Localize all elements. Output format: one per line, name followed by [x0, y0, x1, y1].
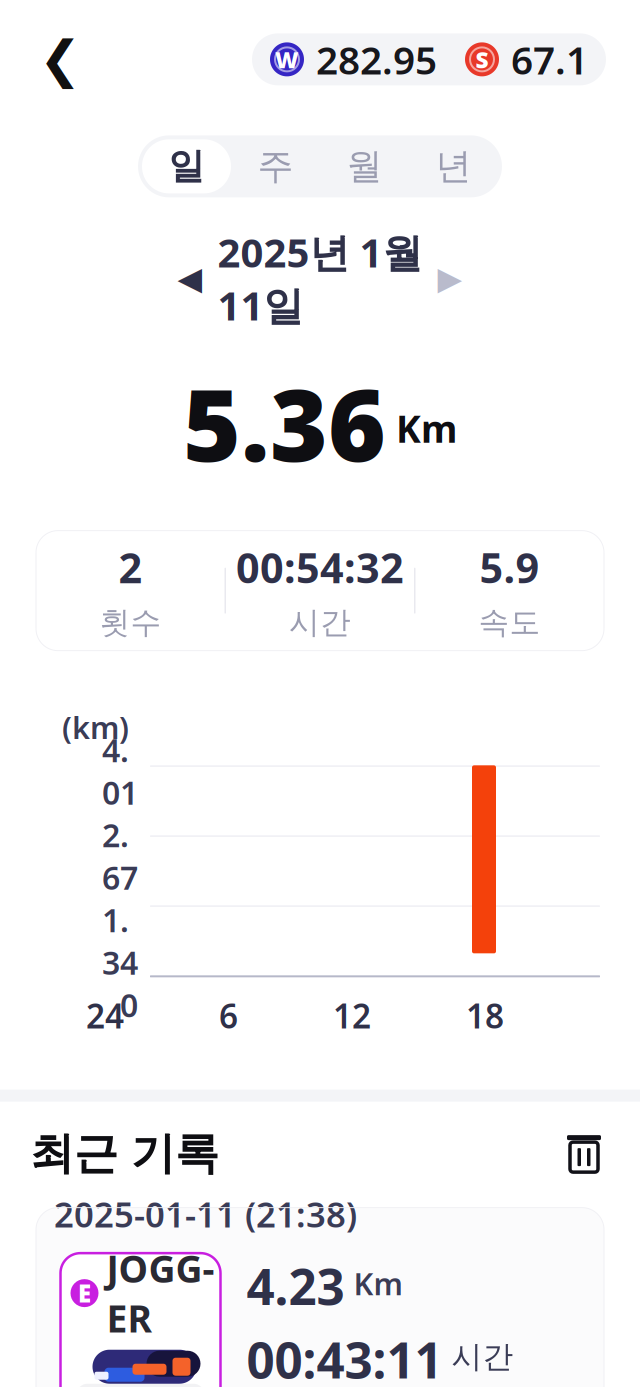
staticText: 6 — [219, 993, 238, 1038]
staticText: 2025년 1월 11일 — [217, 225, 422, 332]
staticText: 속도 — [478, 604, 540, 641]
button[interactable]: Previous day — [165, 253, 215, 303]
staticText: 년 — [435, 144, 471, 188]
staticText: (km) — [62, 707, 129, 747]
staticText: 시간 — [289, 604, 351, 641]
button[interactable]: Next day — [425, 253, 475, 303]
button[interactable]: Delete records — [556, 1126, 612, 1182]
staticText: Km — [353, 1263, 402, 1304]
staticText: 시간 — [451, 1338, 513, 1376]
staticText: 1.34 — [102, 899, 138, 984]
staticText: 4.01 — [102, 729, 138, 814]
staticText: ▶ — [437, 260, 462, 297]
button[interactable]: 주 — [231, 139, 320, 193]
staticText: E — [78, 1277, 91, 1309]
staticText: 00:43:11 — [246, 1327, 442, 1387]
staticText: ◀ — [177, 260, 202, 297]
staticText: S — [475, 44, 488, 74]
staticText: 00:54:32 — [236, 540, 404, 595]
button[interactable]: 월 — [320, 139, 409, 193]
button[interactable]: 2025-01-11 (21:38) — [36, 1208, 604, 1387]
staticText: 0 — [120, 984, 138, 1026]
staticText: 12 — [333, 993, 371, 1038]
staticText: 18 — [466, 993, 504, 1038]
staticText: 5.36 — [183, 358, 386, 489]
button[interactable]: Back — [28, 27, 92, 91]
button[interactable]: Wallet balance — [252, 33, 606, 85]
staticText: ❮ — [39, 31, 81, 88]
staticText: Km — [396, 403, 457, 453]
staticText: 282.95 — [316, 34, 437, 85]
staticText: 2 — [118, 540, 142, 595]
staticText: 주 — [257, 144, 293, 188]
button[interactable]: 일 — [142, 139, 231, 193]
staticText: 4.23 — [246, 1253, 344, 1319]
button[interactable]: 년 — [409, 139, 498, 193]
staticText: 월 — [346, 144, 382, 188]
staticText: 횟수 — [99, 604, 161, 641]
staticText: 2025-01-11 (21:38) — [54, 1191, 357, 1237]
staticText: 67.1 — [511, 34, 588, 85]
staticText: 2.67 — [102, 814, 138, 899]
staticText: JOGGER — [106, 1244, 214, 1343]
staticText: W — [275, 44, 299, 74]
staticText: 24 — [86, 993, 124, 1038]
staticText: 일 — [168, 144, 204, 188]
staticText: 5.9 — [479, 540, 539, 595]
staticText: 최근 기록 — [30, 1127, 219, 1181]
